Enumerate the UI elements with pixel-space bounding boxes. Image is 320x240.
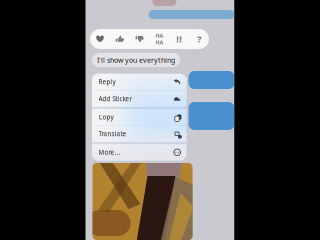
staticText: HA — [155, 32, 163, 39]
button[interactable]: Love — [90, 29, 110, 49]
button[interactable]: Thumbs down — [130, 29, 149, 49]
button[interactable]: Translate — [92, 126, 186, 142]
staticText: Add Sticker — [98, 94, 132, 103]
button[interactable]: Exclamation — [169, 29, 189, 49]
staticText: Copy — [98, 113, 113, 121]
button[interactable]: Thumbs up — [110, 29, 130, 49]
button[interactable]: More... — [92, 144, 186, 160]
staticText: HA — [155, 39, 163, 46]
staticText: I'll show you everything — [97, 55, 175, 65]
button[interactable]: Copy — [92, 109, 186, 125]
staticText: Reply — [98, 78, 115, 86]
staticText: ? — [197, 33, 201, 45]
button[interactable]: Question mark — [189, 29, 209, 49]
staticText: More... — [98, 148, 120, 156]
staticText: Translate — [98, 130, 126, 138]
staticText: !! — [176, 33, 182, 45]
button[interactable]: Haha — [149, 29, 169, 49]
button[interactable]: Reply — [92, 74, 186, 90]
button[interactable]: Add Sticker — [92, 91, 186, 107]
